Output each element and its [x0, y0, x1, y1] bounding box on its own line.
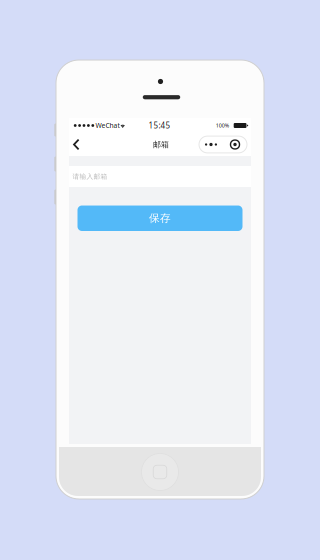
button[interactable]: More options [199, 136, 251, 153]
staticText: 请输入邮箱 [72, 172, 107, 181]
button[interactable]: Back [69, 133, 97, 155]
staticText: 保存 [149, 212, 171, 225]
staticText: 100% [216, 122, 229, 129]
button[interactable]: 保存 [77, 205, 242, 231]
staticText: WeChat [95, 121, 119, 130]
staticText: 15:45 [148, 120, 170, 131]
staticText: 邮箱 [153, 140, 169, 149]
